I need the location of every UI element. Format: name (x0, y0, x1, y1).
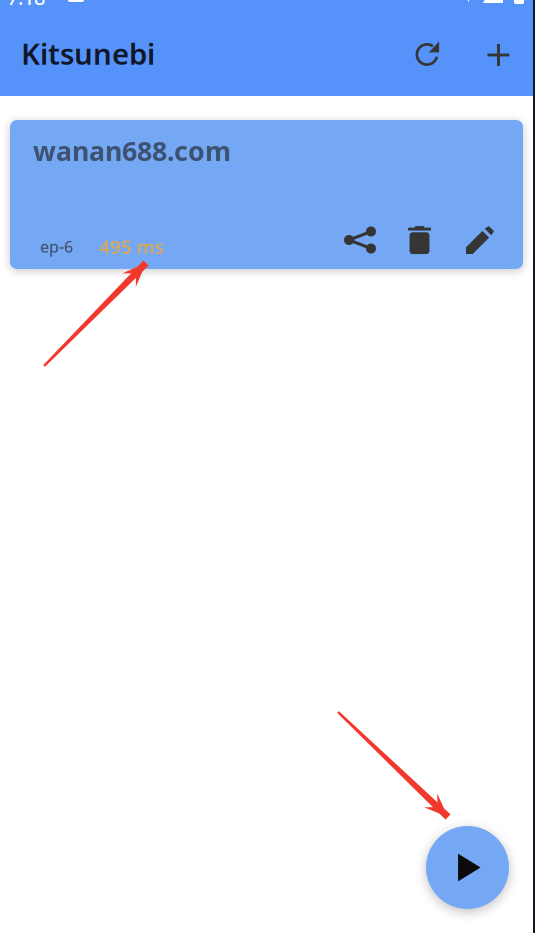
button[interactable]: Add (471, 28, 525, 82)
button[interactable]: Edit (456, 218, 504, 262)
staticText: 495 ms (99, 234, 164, 259)
button[interactable]: Share (336, 218, 384, 262)
staticText: wanan688.com (33, 133, 231, 168)
staticText: 7:18 (7, 0, 45, 11)
button[interactable]: Delete (395, 215, 443, 259)
staticText: ep-6 (40, 236, 73, 257)
staticText: Kitsunebi (21, 34, 155, 73)
button[interactable]: Start (426, 826, 509, 909)
button[interactable]: Refresh (400, 27, 454, 81)
